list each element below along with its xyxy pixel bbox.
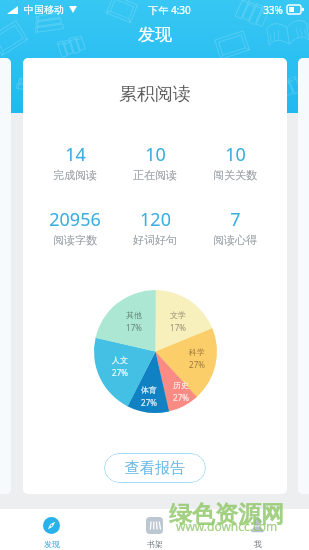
staticText: 17%: [126, 322, 142, 333]
staticText: 科学: [189, 347, 205, 357]
staticText: 体育: [141, 385, 157, 395]
staticText: 人文: [112, 355, 128, 365]
staticText: 120: [140, 207, 171, 232]
staticText: 闯关关数: [213, 168, 257, 182]
button[interactable]: 书架: [103, 509, 206, 550]
button[interactable]: 发现: [0, 509, 103, 550]
staticText: 正在阅读: [133, 168, 177, 182]
staticText: 27%: [189, 359, 205, 370]
staticText: 文学: [170, 310, 186, 320]
staticText: 20956: [49, 207, 101, 232]
staticText: 绿色资源网: [169, 500, 284, 529]
button[interactable]: 我: [206, 509, 309, 550]
staticText: 33%: [263, 3, 283, 17]
staticText: 阅读字数: [53, 233, 97, 247]
staticText: 7: [230, 207, 241, 232]
staticText: 17%: [170, 322, 186, 333]
staticText: 下午 4:30: [148, 3, 191, 17]
staticText: 27%: [141, 397, 157, 408]
staticText: 发现: [138, 24, 172, 45]
staticText: 14: [65, 142, 86, 167]
staticText: 发现: [44, 539, 60, 549]
staticText: 10: [225, 142, 246, 167]
staticText: 10: [145, 142, 166, 167]
staticText: 查看报告: [125, 459, 185, 478]
staticText: 27%: [173, 392, 189, 403]
staticText: 中国移动: [24, 3, 64, 16]
staticText: 我: [254, 539, 262, 549]
staticText: 27%: [112, 367, 128, 378]
button[interactable]: 查看报告: [104, 453, 206, 483]
staticText: 完成阅读: [53, 168, 97, 182]
staticText: 好词好句: [133, 233, 177, 247]
staticText: www.downcc.com: [176, 518, 278, 534]
staticText: 其他: [126, 310, 142, 320]
staticText: 历史: [173, 380, 189, 390]
staticText: 阅读心得: [213, 233, 257, 247]
staticText: 书架: [147, 539, 163, 549]
staticText: 累积阅读: [23, 83, 287, 106]
